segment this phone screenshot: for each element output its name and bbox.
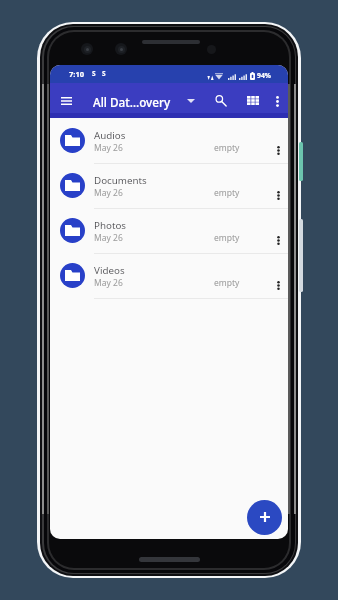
button[interactable]: Select data source	[180, 87, 202, 114]
staticText: empty	[214, 277, 240, 289]
button[interactable]: Audios options	[268, 139, 288, 162]
button[interactable]: All Dat…overy	[93, 94, 171, 110]
staticText: May 26	[94, 277, 123, 289]
button[interactable]: Search	[207, 87, 234, 114]
staticText: empty	[214, 232, 240, 244]
staticText: Videos	[94, 264, 125, 277]
staticText: empty	[214, 142, 240, 154]
staticText: May 26	[94, 232, 123, 244]
staticText: May 26	[94, 142, 123, 154]
button[interactable]: Switch to grid view	[239, 87, 266, 114]
button[interactable]: Videos	[50, 254, 288, 299]
staticText: All Dat…overy	[93, 94, 171, 110]
button[interactable]: Documents	[50, 164, 288, 209]
button[interactable]: Photos options	[268, 229, 288, 252]
staticText: S	[102, 69, 106, 78]
button[interactable]: More options	[266, 88, 288, 115]
staticText: S	[92, 69, 96, 78]
button[interactable]: Photos	[50, 209, 288, 254]
staticText: Photos	[94, 219, 127, 232]
staticText: empty	[214, 187, 240, 199]
button[interactable]: Audios	[50, 119, 288, 164]
button[interactable]: Documents options	[268, 184, 288, 207]
staticText: 94%	[257, 71, 271, 80]
staticText: Audios	[94, 129, 126, 142]
button[interactable]: Videos options	[268, 274, 288, 297]
staticText: 7:10	[69, 69, 84, 79]
staticText: Documents	[94, 174, 147, 187]
button[interactable]: Open navigation drawer	[54, 87, 79, 114]
button[interactable]: Add	[247, 500, 282, 535]
staticText: May 26	[94, 187, 123, 199]
